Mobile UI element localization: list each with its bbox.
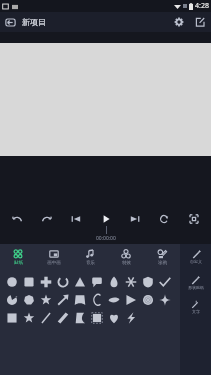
button[interactable]: Play — [94, 209, 118, 229]
button[interactable]: Shape 15 — [71, 291, 88, 308]
button[interactable]: Shape 26 — [88, 309, 105, 326]
button[interactable]: Shape 17 — [105, 291, 122, 308]
staticText: 00:00:00 — [96, 235, 116, 242]
button[interactable]: Back — [3, 15, 18, 30]
button[interactable]: Next — [123, 209, 147, 229]
button[interactable]: Shape 20 — [156, 291, 173, 308]
staticText: 涂鸦 — [158, 260, 167, 266]
button[interactable]: Fullscreen — [182, 209, 206, 229]
button[interactable]: Shape 4 — [54, 273, 71, 290]
button[interactable]: Shape 1 — [3, 273, 20, 290]
button[interactable]: Shape 11 — [3, 291, 20, 308]
button[interactable]: Undo — [5, 209, 29, 229]
staticText: 形状贴纸 — [188, 285, 204, 290]
button[interactable]: Previous — [64, 209, 88, 229]
button[interactable]: Shape 23 — [37, 309, 54, 326]
button[interactable]: Shape 2 — [20, 273, 37, 290]
staticText: 自定义 — [190, 259, 202, 264]
button[interactable]: 形状贴纸 — [180, 275, 211, 291]
staticText: 画中画 — [47, 260, 61, 266]
staticText: 新项目 — [22, 17, 46, 27]
button[interactable]: Loop — [152, 209, 176, 229]
button[interactable]: Shape 16 — [88, 291, 105, 308]
button[interactable]: 文字 — [180, 299, 211, 315]
button[interactable]: Settings — [172, 15, 186, 29]
button[interactable]: Shape 22 — [20, 309, 37, 326]
staticText: 音乐 — [86, 260, 95, 266]
button[interactable]: Shape 18 — [122, 291, 139, 308]
button[interactable]: 音乐 — [72, 244, 108, 270]
button[interactable]: Shape 27 — [105, 309, 122, 326]
button[interactable]: Shape 13 — [37, 291, 54, 308]
staticText: 特效 — [122, 260, 131, 266]
button[interactable]: Shape 8 — [122, 273, 139, 290]
button[interactable]: Shape 7 — [105, 273, 122, 290]
button[interactable]: 画中画 — [36, 244, 72, 270]
button[interactable]: Shape 28 — [122, 309, 139, 326]
button[interactable]: Shape 19 — [139, 291, 156, 308]
button[interactable]: Shape 25 — [71, 309, 88, 326]
button[interactable]: Shape 6 — [88, 273, 105, 290]
button[interactable]: 特效 — [108, 244, 144, 270]
staticText: 贴纸 — [14, 260, 23, 266]
button[interactable]: Export — [193, 15, 207, 29]
button[interactable]: Shape 9 — [139, 273, 156, 290]
button[interactable]: Shape 24 — [54, 309, 71, 326]
button[interactable]: 自定义 — [180, 244, 211, 270]
button[interactable]: Shape 10 — [156, 273, 173, 290]
button[interactable]: Shape 14 — [54, 291, 71, 308]
staticText: 文字 — [192, 309, 200, 314]
button[interactable]: Shape 21 — [3, 309, 20, 326]
button[interactable]: Shape 3 — [37, 273, 54, 290]
button[interactable]: Shape 12 — [20, 291, 37, 308]
staticText: 4:28 — [195, 1, 209, 11]
button[interactable]: Shape 5 — [71, 273, 88, 290]
button[interactable]: 贴纸 — [0, 244, 36, 270]
button[interactable]: 涂鸦 — [144, 244, 180, 270]
button[interactable]: Redo — [35, 209, 59, 229]
